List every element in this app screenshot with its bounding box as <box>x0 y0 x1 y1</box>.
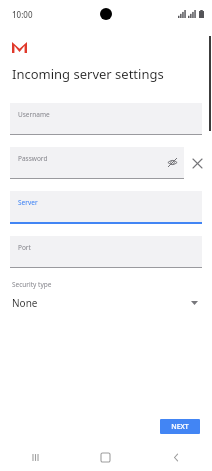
button[interactable]: Port <box>10 236 202 268</box>
button[interactable]: Back <box>141 444 212 471</box>
staticText: Username <box>18 110 50 119</box>
button[interactable]: Recent apps <box>0 444 70 471</box>
staticText: Password <box>18 154 48 163</box>
button[interactable]: Password <box>10 147 184 179</box>
button[interactable]: Security type <box>12 280 200 310</box>
staticText: Security type <box>12 280 52 289</box>
staticText: Server <box>18 198 38 207</box>
staticText: None <box>12 296 38 310</box>
staticText: 10:00 <box>12 9 33 20</box>
button[interactable]: Server <box>10 191 202 224</box>
staticText: Port <box>18 243 31 252</box>
button[interactable]: Home <box>70 444 141 471</box>
button[interactable]: Clear <box>188 154 206 172</box>
button[interactable]: NEXT <box>160 419 200 434</box>
button[interactable]: Show password <box>167 157 178 168</box>
button[interactable]: Username <box>10 103 202 135</box>
staticText: NEXT <box>171 422 189 432</box>
staticText: Incoming server settings <box>12 65 164 83</box>
